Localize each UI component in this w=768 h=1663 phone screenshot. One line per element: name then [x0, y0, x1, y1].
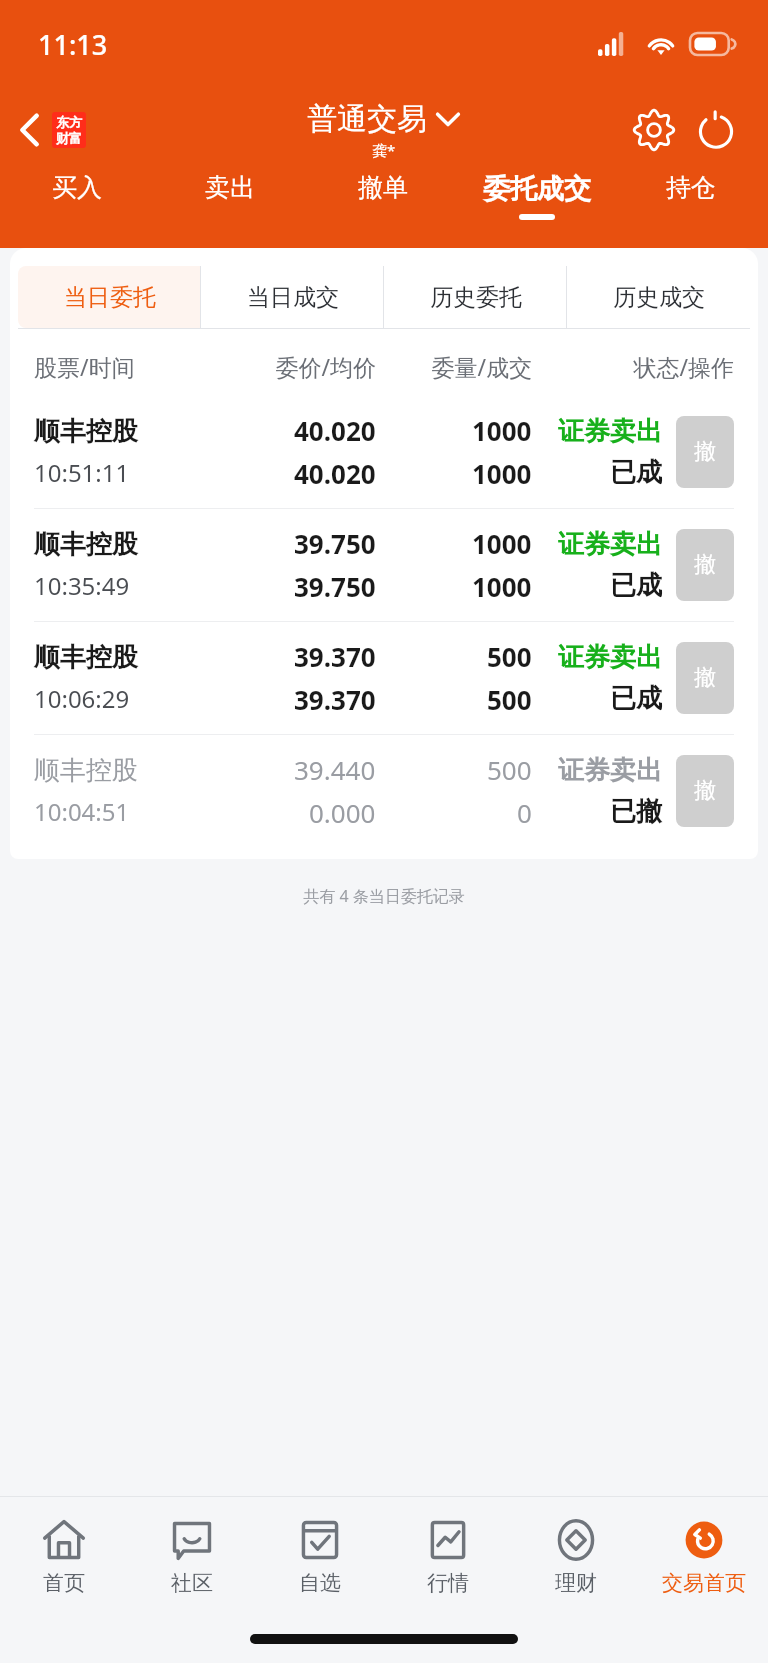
button[interactable]: 顺丰控股 [10, 735, 758, 847]
button[interactable]: 委托成交 [460, 172, 614, 242]
staticText: 证券卖出 [558, 641, 662, 674]
button[interactable]: 撤单 [306, 172, 460, 242]
staticText: 撤单 [358, 172, 408, 203]
staticText: 已撤 [610, 795, 662, 828]
staticText: 状态/操作 [532, 351, 734, 382]
staticText: 当日委托 [64, 283, 156, 312]
button[interactable]: 首页 [0, 1497, 128, 1615]
staticText: 卖出 [205, 172, 255, 203]
staticText: 历史委托 [430, 283, 522, 312]
staticText: 龚* [372, 140, 396, 160]
staticText: 0 [517, 795, 532, 830]
button[interactable]: Refresh [692, 106, 740, 154]
staticText: 已成 [610, 682, 662, 715]
staticText: 39.750 [294, 569, 376, 604]
staticText: 当日成交 [247, 283, 339, 312]
staticText: 交易首页 [662, 1570, 746, 1596]
staticText: 委托成交 [483, 172, 591, 206]
staticText: 40.020 [294, 456, 376, 491]
button[interactable]: 撤 [676, 755, 734, 827]
button[interactable]: 买入 [0, 172, 153, 242]
button[interactable]: 顺丰控股 [10, 622, 758, 734]
staticText: 委价/均价 [213, 351, 376, 382]
button[interactable]: Settings [630, 106, 678, 154]
staticText: 500 [487, 752, 532, 787]
staticText: 理财 [555, 1570, 597, 1596]
button[interactable]: 自选 [256, 1497, 384, 1615]
button[interactable]: 顺丰控股 [10, 396, 758, 508]
button[interactable]: 撤 [676, 529, 734, 601]
staticText: 1000 [472, 569, 532, 604]
staticText: 自选 [299, 1570, 341, 1596]
staticText: 39.370 [294, 682, 376, 717]
staticText: 0.000 [309, 795, 376, 830]
staticText: 共有 4 条当日委托记录 [0, 885, 768, 907]
staticText: 39.440 [294, 752, 376, 787]
button[interactable]: 撤 [676, 642, 734, 714]
button[interactable]: 撤 [676, 416, 734, 488]
staticText: 10:35:49 [34, 569, 130, 602]
button[interactable]: 历史成交 [567, 266, 750, 328]
staticText: 委量/成交 [376, 351, 532, 382]
staticText: 顺丰控股 [34, 528, 138, 561]
staticText: 500 [487, 639, 532, 674]
button[interactable]: 当日成交 [201, 266, 384, 328]
staticText: 1000 [472, 456, 532, 491]
staticText: 首页 [43, 1570, 85, 1596]
staticText: 10:51:11 [34, 456, 130, 489]
button[interactable]: Back [10, 106, 94, 154]
button[interactable]: 当日委托 [18, 266, 201, 328]
button[interactable]: 交易首页 [640, 1497, 768, 1615]
staticText: 证券卖出 [558, 528, 662, 561]
staticText: 1000 [472, 413, 532, 448]
button[interactable]: 持仓 [614, 172, 768, 242]
staticText: 股票/时间 [34, 351, 213, 382]
staticText: 证券卖出 [558, 415, 662, 448]
staticText: 500 [487, 682, 532, 717]
button[interactable]: 历史委托 [384, 266, 567, 328]
staticText: 1000 [472, 526, 532, 561]
staticText: 买入 [52, 172, 102, 203]
staticText: 11:13 [38, 26, 108, 63]
staticText: 财富 [56, 130, 82, 146]
staticText: 39.750 [294, 526, 376, 561]
staticText: 撤 [694, 438, 716, 466]
button[interactable]: 卖出 [153, 172, 306, 242]
staticText: 顺丰控股 [34, 415, 138, 448]
staticText: 历史成交 [613, 283, 705, 312]
staticText: 40.020 [294, 413, 376, 448]
staticText: 顺丰控股 [34, 754, 138, 787]
staticText: 持仓 [666, 172, 716, 203]
staticText: 10:04:51 [34, 795, 130, 828]
staticText: 撤 [694, 551, 716, 579]
staticText: 已成 [610, 456, 662, 489]
staticText: 撤 [694, 777, 716, 805]
staticText: 普通交易 [307, 100, 427, 138]
button[interactable]: 理财 [512, 1497, 640, 1615]
staticText: 已成 [610, 569, 662, 602]
staticText: 10:06:29 [34, 682, 130, 715]
button[interactable]: 社区 [128, 1497, 256, 1615]
button[interactable]: 行情 [384, 1497, 512, 1615]
button[interactable]: 普通交易 [307, 100, 461, 160]
staticText: 证券卖出 [558, 754, 662, 787]
staticText: 东方 [56, 114, 82, 130]
staticText: 撤 [694, 664, 716, 692]
staticText: 39.370 [294, 639, 376, 674]
button[interactable]: 顺丰控股 [10, 509, 758, 621]
staticText: 行情 [427, 1570, 469, 1596]
staticText: 顺丰控股 [34, 641, 138, 674]
staticText: 社区 [171, 1570, 213, 1596]
